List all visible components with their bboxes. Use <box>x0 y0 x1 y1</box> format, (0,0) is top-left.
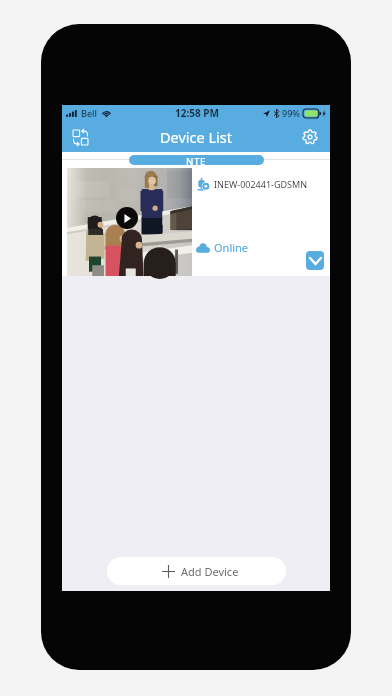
button[interactable]: Settings <box>298 125 322 149</box>
staticText: Bell <box>81 107 97 119</box>
button[interactable]: Play video <box>67 168 192 276</box>
button[interactable]: Add Device <box>107 557 286 585</box>
staticText: INEW-002441-GDSMN <box>214 178 308 190</box>
staticText: 12:58 PM <box>175 106 219 120</box>
staticText: Online <box>214 240 249 255</box>
staticText: Add Device <box>181 564 239 579</box>
button[interactable]: Switch view <box>68 125 92 149</box>
button[interactable]: Expand device <box>306 251 324 270</box>
button[interactable]: NTE <box>129 155 264 165</box>
staticText: NTE <box>186 155 207 165</box>
staticText: Device List <box>160 127 233 147</box>
staticText: 99% <box>282 107 300 119</box>
button[interactable]: NTE <box>62 152 330 276</box>
